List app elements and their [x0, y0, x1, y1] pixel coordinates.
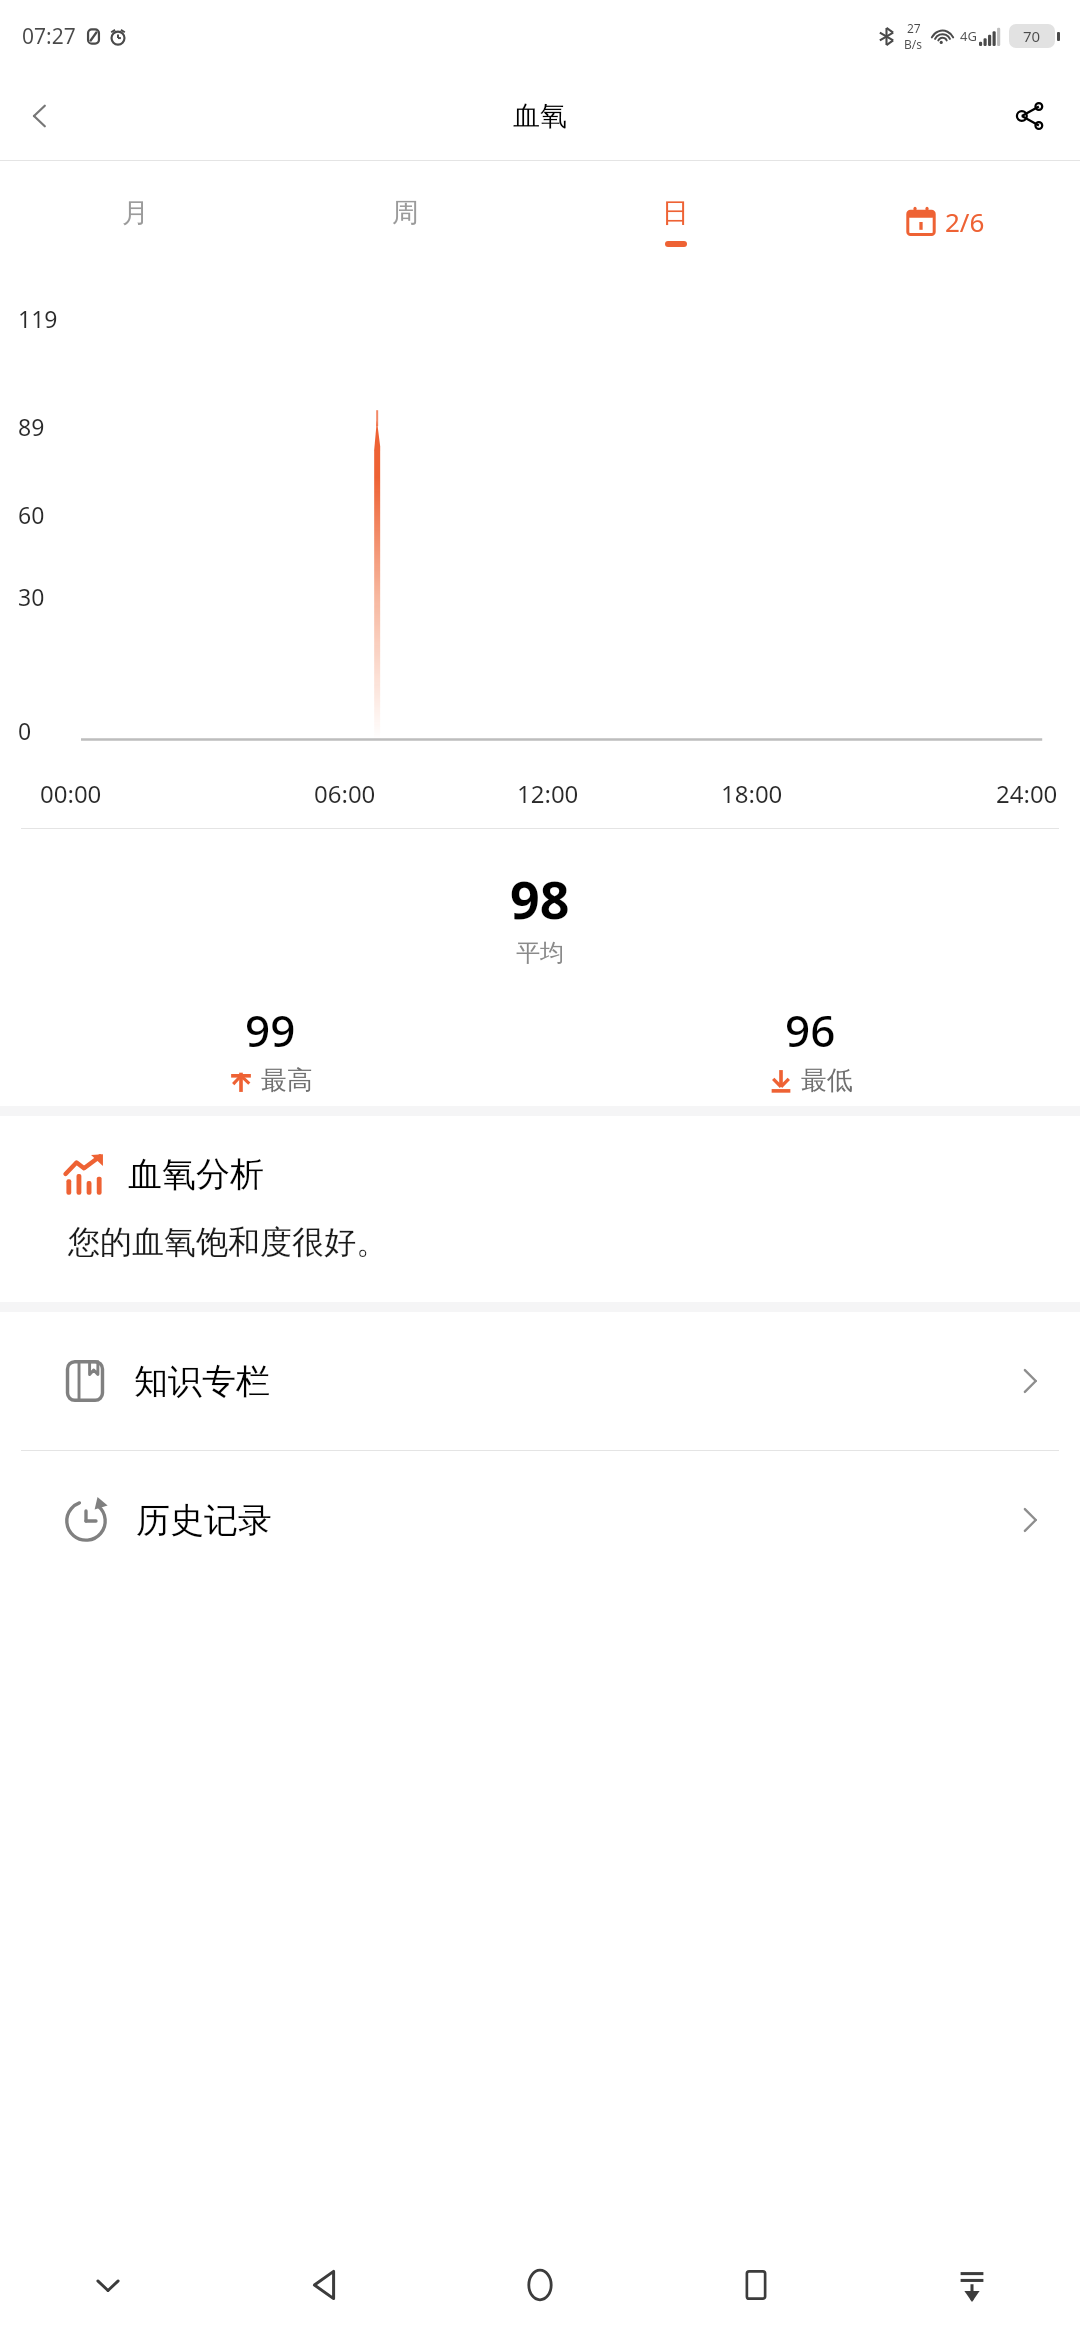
- staticText: 70: [1023, 26, 1041, 46]
- button[interactable]: Recents: [648, 2230, 864, 2340]
- staticText: 30: [18, 581, 45, 612]
- staticText: 00:00: [40, 777, 102, 810]
- staticText: 119: [18, 303, 58, 334]
- staticText: 60: [18, 499, 45, 530]
- staticText: 2/6: [945, 204, 985, 239]
- button[interactable]: 96: [540, 1000, 1080, 1097]
- button[interactable]: Home: [432, 2230, 648, 2340]
- staticText: 98: [510, 863, 570, 934]
- staticText: 知识专栏: [134, 1360, 270, 1403]
- staticText: B/s: [904, 36, 923, 52]
- button[interactable]: 血氧分析: [0, 1116, 1080, 1302]
- button[interactable]: 日: [540, 196, 810, 247]
- button[interactable]: 月: [0, 196, 270, 247]
- staticText: 日: [662, 196, 689, 230]
- button[interactable]: Hide keyboard: [864, 2230, 1080, 2340]
- staticText: 99: [245, 1000, 296, 1060]
- staticText: 您的血氧饱和度很好。: [68, 1222, 388, 1262]
- staticText: 06:00: [314, 777, 376, 810]
- staticText: 周: [392, 196, 419, 230]
- staticText: 0: [18, 715, 32, 746]
- staticText: 12:00: [517, 777, 579, 810]
- button[interactable]: Collapse: [0, 2230, 216, 2340]
- staticText: 血氧: [513, 99, 567, 133]
- staticText: 最低: [801, 1064, 853, 1097]
- button[interactable]: Share: [998, 84, 1062, 148]
- button[interactable]: 周: [270, 196, 540, 247]
- staticText: 18:00: [721, 777, 783, 810]
- staticText: 血氧分析: [128, 1153, 264, 1196]
- staticText: 24:00: [996, 777, 1058, 810]
- button[interactable]: 99: [0, 1000, 540, 1097]
- staticText: 历史记录: [136, 1499, 272, 1542]
- button[interactable]: Back: [8, 84, 72, 148]
- staticText: 月: [122, 196, 149, 230]
- staticText: 最高: [261, 1064, 313, 1097]
- button[interactable]: Back: [216, 2230, 432, 2340]
- staticText: 07:27: [22, 22, 76, 51]
- button[interactable]: 知识专栏: [0, 1312, 1080, 1450]
- button[interactable]: 2/6: [896, 196, 995, 247]
- button[interactable]: 历史记录: [0, 1451, 1080, 1589]
- staticText: 平均: [516, 938, 564, 968]
- staticText: 89: [18, 411, 45, 442]
- staticText: 4G: [960, 27, 977, 45]
- staticText: 27: [907, 20, 921, 36]
- staticText: 96: [785, 1000, 836, 1060]
